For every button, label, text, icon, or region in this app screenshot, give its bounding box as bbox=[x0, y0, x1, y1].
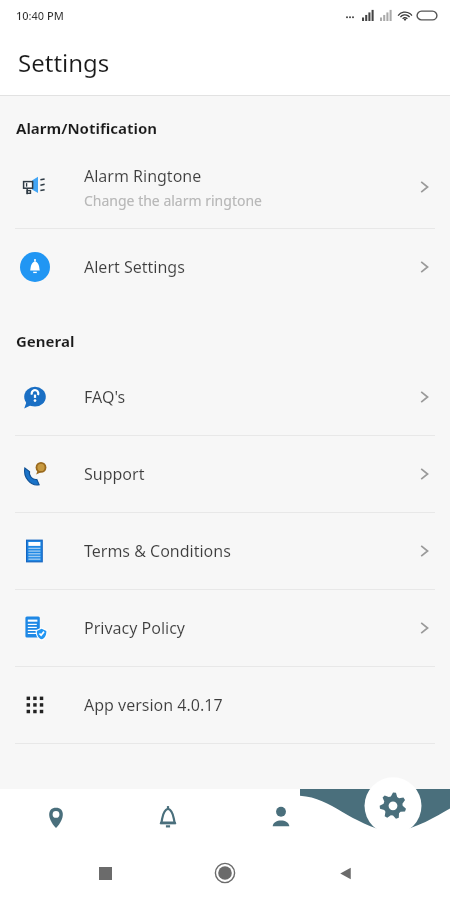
staticText: FAQ's bbox=[84, 386, 126, 408]
staticText: Alarm/Notification bbox=[16, 118, 158, 138]
button[interactable]: Terms & Conditions bbox=[0, 513, 450, 589]
staticText: Alert Settings bbox=[84, 256, 185, 278]
staticText: General bbox=[16, 331, 75, 351]
staticText: Support bbox=[84, 463, 145, 485]
button[interactable]: App version 4.0.17 bbox=[0, 667, 450, 743]
staticText: Settings bbox=[18, 46, 110, 79]
button[interactable]: Support bbox=[0, 436, 450, 512]
button[interactable]: Privacy Policy bbox=[0, 590, 450, 666]
button[interactable]: Settings bbox=[300, 789, 450, 845]
button[interactable]: Profile bbox=[224, 789, 337, 845]
button[interactable]: Alert Settings bbox=[0, 229, 450, 305]
staticText: Privacy Policy bbox=[84, 617, 185, 639]
staticText: App version 4.0.17 bbox=[84, 694, 223, 716]
staticText: Terms & Conditions bbox=[84, 540, 231, 562]
button[interactable]: Location bbox=[0, 789, 112, 845]
staticText: 10:40 PM bbox=[16, 8, 64, 23]
staticText: Change the alarm ringtone bbox=[84, 191, 262, 210]
button[interactable]: Recents bbox=[90, 858, 120, 888]
button[interactable]: Alerts bbox=[112, 789, 224, 845]
button[interactable]: Back bbox=[330, 858, 360, 888]
button[interactable]: Alarm Ringtone bbox=[0, 146, 450, 228]
button[interactable]: FAQ's bbox=[0, 359, 450, 435]
button[interactable]: Home bbox=[208, 856, 242, 890]
staticText: Alarm Ringtone bbox=[84, 165, 202, 187]
